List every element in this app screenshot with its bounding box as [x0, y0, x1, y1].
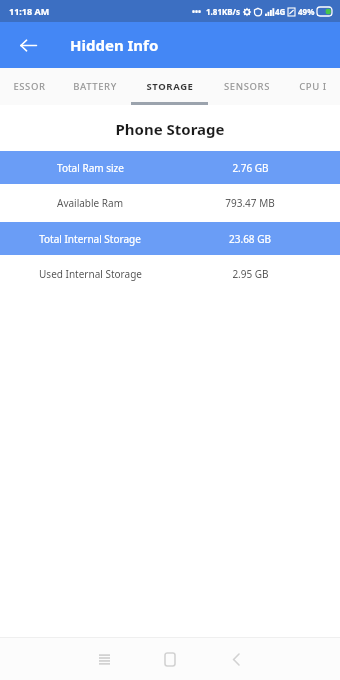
button[interactable]: Home: [147, 638, 193, 680]
staticText: •••: [192, 6, 202, 17]
button[interactable]: ESSOR: [0, 68, 58, 105]
button[interactable]: CPU I: [285, 68, 340, 105]
staticText: CPU I: [299, 80, 327, 93]
staticText: 2.76 GB: [232, 161, 269, 175]
button[interactable]: Used Internal Storage: [0, 255, 340, 293]
staticText: Total Ram size: [57, 161, 124, 175]
staticText: 4G: [275, 6, 286, 17]
staticText: Hidden Info: [70, 35, 159, 55]
staticText: SENSORS: [224, 80, 270, 93]
button[interactable]: STORAGE: [131, 68, 209, 105]
staticText: 23.68 GB: [229, 232, 271, 246]
staticText: STORAGE: [146, 80, 194, 93]
staticText: Total Internal Storage: [39, 232, 141, 246]
staticText: Available Ram: [57, 196, 123, 210]
button[interactable]: Recents: [81, 638, 127, 680]
button[interactable]: SENSORS: [209, 68, 285, 105]
button[interactable]: Total Ram size: [0, 151, 340, 184]
button[interactable]: Available Ram: [0, 184, 340, 222]
staticText: 1.81KB/s: [206, 6, 240, 17]
button[interactable]: Back: [12, 29, 44, 61]
staticText: ESSOR: [13, 80, 46, 93]
staticText: BATTERY: [73, 80, 117, 93]
button[interactable]: Total Internal Storage: [0, 222, 340, 255]
button[interactable]: Back: [213, 638, 259, 680]
button[interactable]: BATTERY: [58, 68, 131, 105]
staticText: Phone Storage: [0, 119, 340, 139]
staticText: 2.95 GB: [232, 267, 269, 281]
staticText: 793.47 MB: [225, 196, 275, 210]
staticText: 11:18 AM: [9, 5, 50, 17]
staticText: 49%: [298, 6, 315, 17]
staticText: Used Internal Storage: [39, 267, 142, 281]
